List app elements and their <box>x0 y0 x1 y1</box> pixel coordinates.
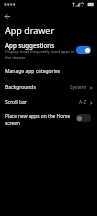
staticText: System <box>70 84 87 91</box>
button[interactable]: On <box>76 46 91 54</box>
button[interactable]: Back <box>1 10 14 23</box>
button[interactable]: Place new apps on the Home screen <box>0 110 97 129</box>
button[interactable]: App suggestions <box>0 40 97 62</box>
staticText: Backgrounds <box>5 84 36 91</box>
staticText: A-Z <box>79 99 87 106</box>
button[interactable]: Off <box>76 114 91 122</box>
staticText: Manage app categories <box>5 68 61 75</box>
staticText: Place new apps on the Home screen <box>5 113 73 127</box>
staticText: Display most frequently used apps in the… <box>5 49 76 61</box>
staticText: Scroll bar <box>5 99 27 106</box>
staticText: App drawer <box>5 24 55 36</box>
button[interactable]: Manage app categories <box>0 64 97 79</box>
staticText: App suggestions <box>5 41 55 49</box>
button[interactable]: Scroll bar <box>0 95 97 110</box>
button[interactable]: Backgrounds <box>0 80 97 95</box>
